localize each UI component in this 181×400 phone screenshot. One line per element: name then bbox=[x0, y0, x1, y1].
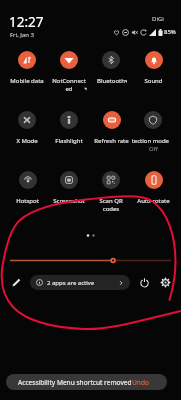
button[interactable]: 2 apps are active bbox=[30, 275, 130, 290]
button[interactable]: Power bbox=[136, 274, 152, 290]
button[interactable]: Screenshot bbox=[48, 169, 90, 211]
staticText: Accessibility Menu shortcut removed bbox=[18, 378, 132, 387]
button[interactable]: Scan QR codes bbox=[90, 169, 132, 211]
staticText: Flashlight bbox=[55, 137, 83, 145]
staticText: Sound bbox=[144, 77, 163, 85]
staticText: 2 apps are active bbox=[47, 279, 95, 287]
button[interactable]: X Mode bbox=[6, 109, 48, 151]
button[interactable]: Sound bbox=[132, 49, 174, 91]
button[interactable]: Accessibility Menu shortcut removed bbox=[6, 374, 167, 390]
staticText: Mobile data bbox=[10, 77, 44, 85]
button[interactable]: Protection mode bbox=[132, 109, 174, 151]
staticText: Refresh rate bbox=[94, 137, 129, 145]
staticText: Hotspot bbox=[16, 197, 39, 205]
button[interactable]: Edit quick settings bbox=[8, 274, 24, 290]
staticText: Bluetooth bbox=[97, 77, 125, 85]
staticText: 12:27 bbox=[9, 13, 44, 31]
button[interactable]: Settings bbox=[157, 274, 173, 290]
staticText: NotConnected bbox=[51, 77, 87, 91]
staticText: Undo bbox=[132, 378, 150, 387]
staticText: Off bbox=[149, 145, 158, 151]
button[interactable]: NotConnected bbox=[48, 49, 90, 91]
staticText: 85% bbox=[164, 28, 176, 36]
staticText: DiGi bbox=[152, 15, 164, 23]
button[interactable]: Mobile data bbox=[6, 49, 48, 91]
button[interactable]: Flashlight bbox=[48, 109, 90, 151]
staticText: Protection mode bbox=[132, 137, 169, 145]
staticText: Scan QR codes bbox=[96, 197, 126, 211]
button[interactable]: Auto-rotate bbox=[132, 169, 174, 211]
staticText: Auto-rotate bbox=[137, 197, 170, 205]
button[interactable]: Bluetooth bbox=[90, 49, 132, 91]
staticText: Screenshot bbox=[53, 197, 85, 205]
staticText: Fri, Jan 3 bbox=[10, 31, 35, 39]
button[interactable]: Refresh rate bbox=[90, 109, 132, 151]
button[interactable]: Hotspot bbox=[6, 169, 48, 211]
staticText: X Mode bbox=[16, 137, 38, 145]
